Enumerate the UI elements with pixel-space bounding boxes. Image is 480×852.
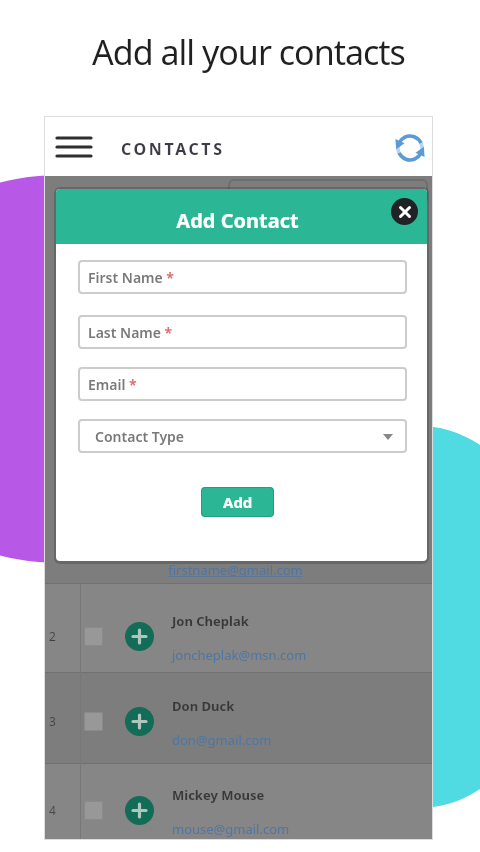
staticText: Last Name * [88, 323, 173, 342]
button[interactable]: Email * [78, 367, 407, 401]
staticText: firstname@gmail.com [168, 561, 303, 577]
staticText: don@gmail.com [172, 731, 272, 749]
staticText: Email * [88, 375, 137, 394]
staticText: 2 [49, 628, 56, 644]
staticText: Add [223, 492, 253, 512]
staticText: Jon Cheplak [172, 612, 249, 630]
button[interactable]: Contact Type [78, 419, 407, 453]
staticText: joncheplak@msn.com [172, 646, 307, 664]
button[interactable]: First Name * [78, 260, 407, 294]
staticText: 3 [49, 713, 56, 729]
button[interactable] [391, 198, 418, 225]
staticText: Add Contact [176, 207, 299, 234]
button[interactable]: Add [201, 487, 274, 517]
staticText: Add all your contacts [92, 29, 405, 73]
staticText: mouse@gmail.com [172, 820, 290, 838]
staticText: 4 [49, 802, 56, 818]
staticText: First Name * [88, 268, 175, 287]
staticText: Don Duck [172, 697, 235, 715]
button[interactable]: Last Name * [78, 315, 407, 349]
staticText: Mickey Mouse [172, 786, 265, 804]
staticText: Contact Type [95, 427, 185, 446]
staticText: CONTACTS [121, 138, 225, 160]
